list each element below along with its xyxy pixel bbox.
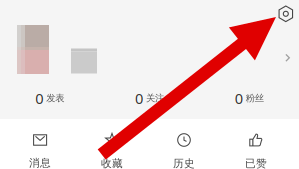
staticText: 粉丝 <box>246 92 264 104</box>
staticText: 0 <box>135 88 143 108</box>
staticText: 历史 <box>173 157 195 169</box>
staticText: 发表 <box>46 92 64 104</box>
staticText: 0 <box>235 88 243 108</box>
button[interactable]: 收藏 <box>76 133 148 169</box>
staticText: 已赞 <box>245 157 267 169</box>
staticText: 收藏 <box>101 157 123 169</box>
button[interactable]: 消息 <box>4 133 76 169</box>
button[interactable]: 已赞 <box>220 133 292 169</box>
button[interactable]: 0 <box>199 88 299 108</box>
staticText: 关注 <box>146 92 164 104</box>
button[interactable]: 0 <box>100 88 199 108</box>
staticText: 0 <box>35 88 43 108</box>
button[interactable]: 0 <box>0 88 100 108</box>
button[interactable]: Settings <box>275 2 297 26</box>
staticText: 消息 <box>29 156 51 169</box>
button[interactable] <box>0 0 299 119</box>
button[interactable]: 历史 <box>148 133 220 169</box>
